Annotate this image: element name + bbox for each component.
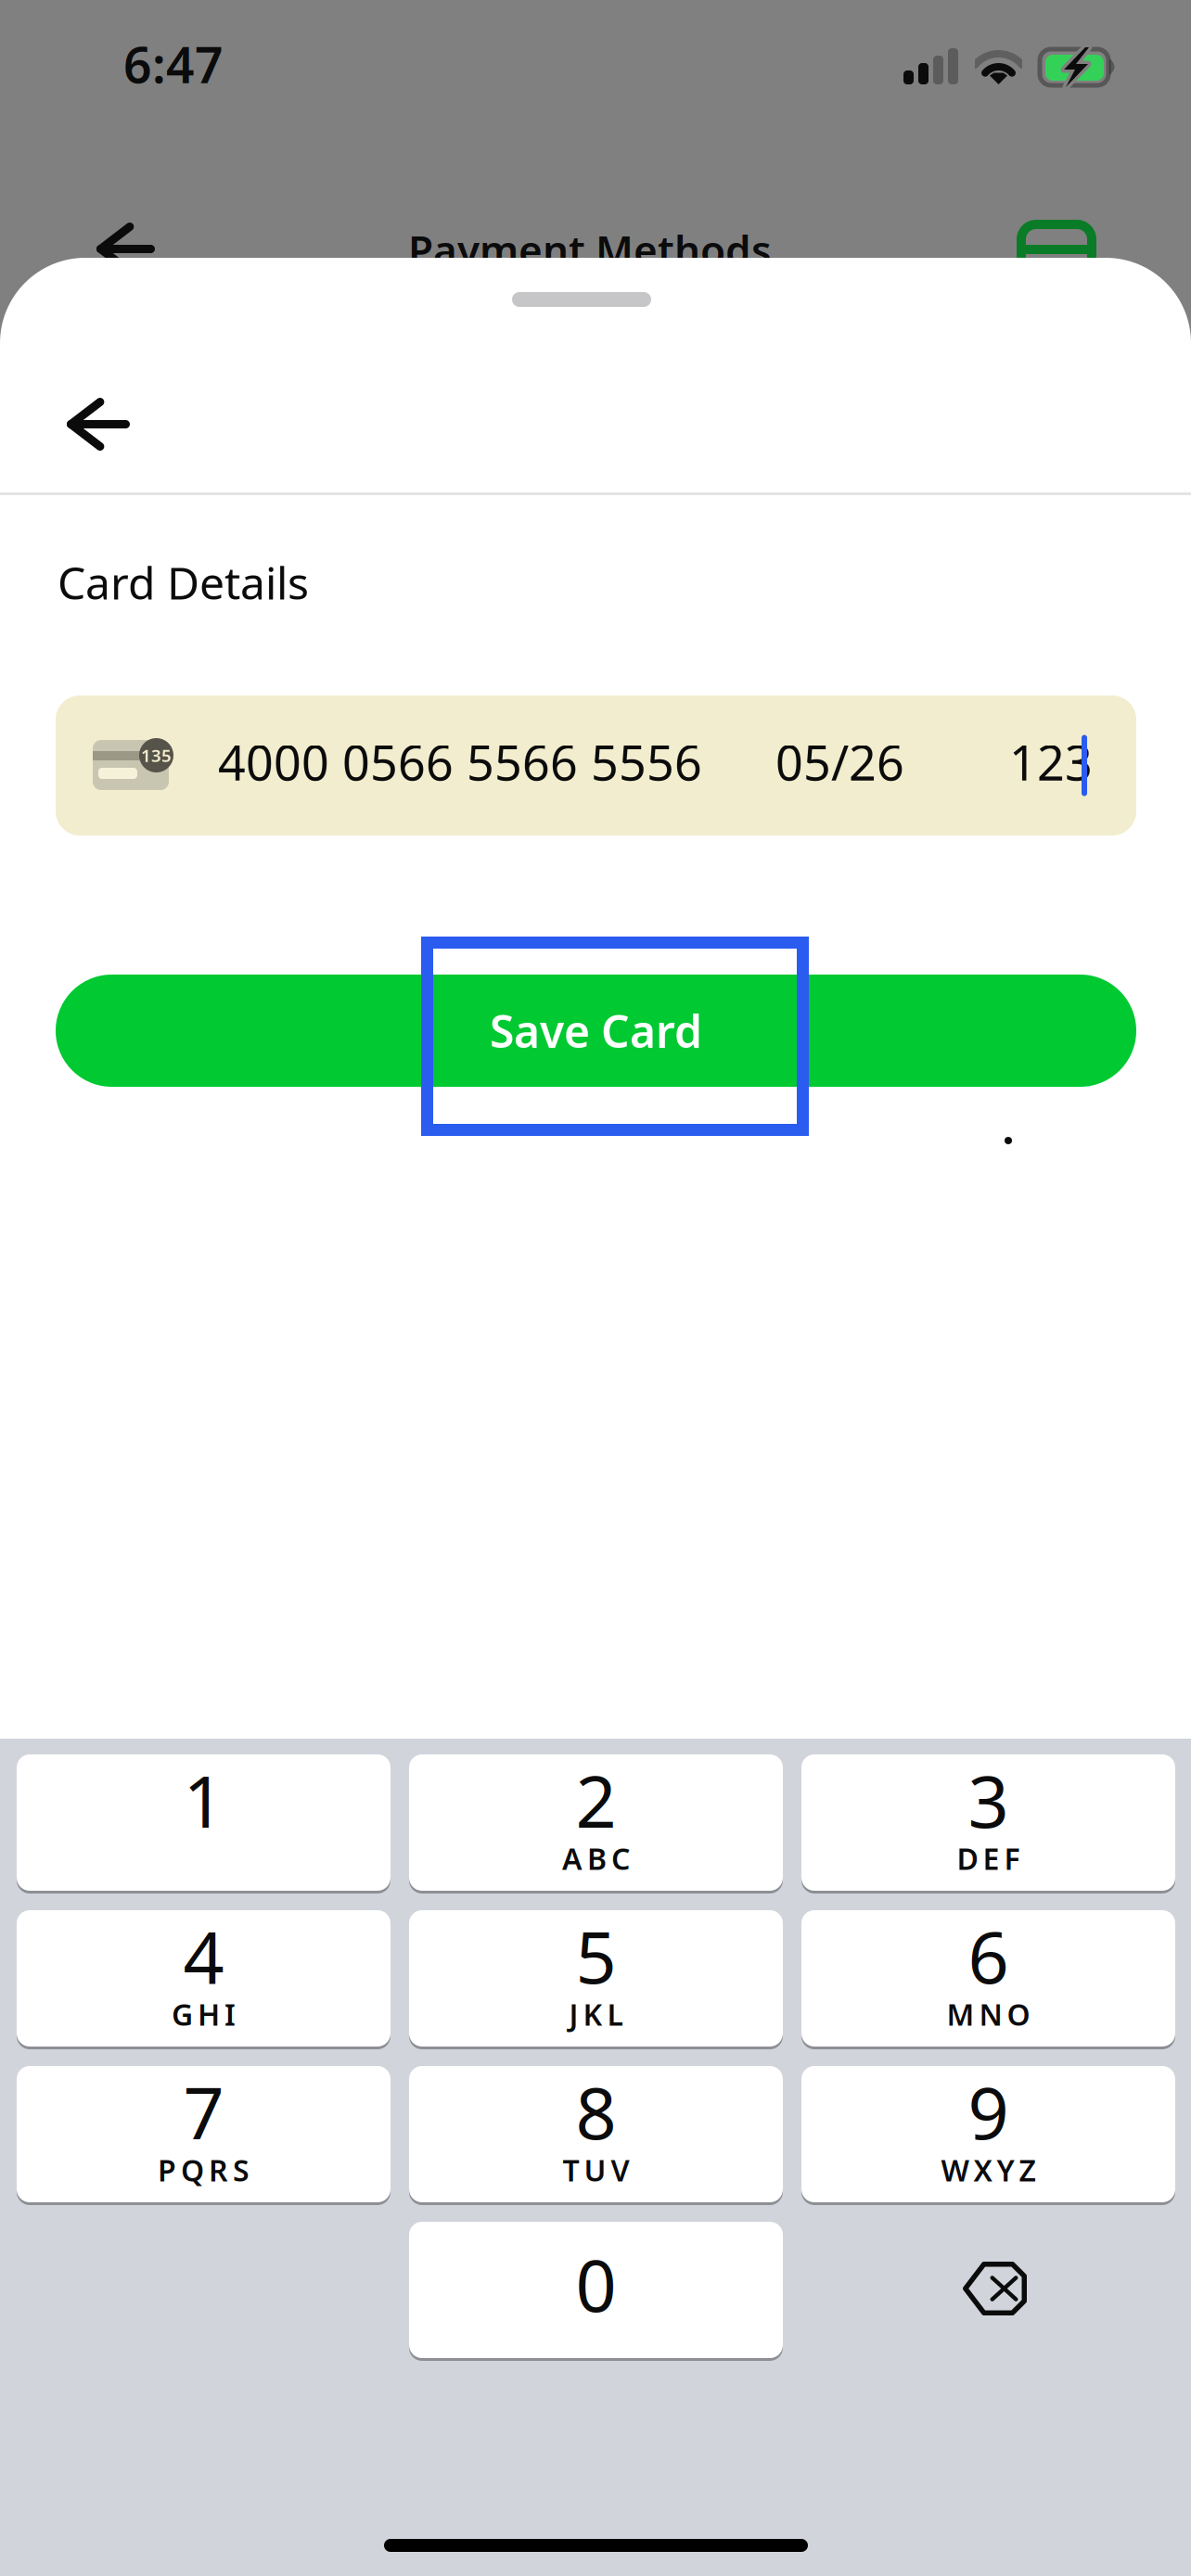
staticText: 6 [968, 1908, 1009, 2003]
staticText: 123 [1009, 730, 1093, 794]
staticText: TUV [563, 2150, 629, 2190]
button[interactable]: Back [63, 370, 187, 509]
button[interactable]: 6 [801, 1910, 1175, 2049]
staticText: WXYZ [941, 2150, 1036, 2190]
button[interactable]: 5 [409, 1910, 783, 2049]
staticText: 5 [576, 1908, 616, 2003]
button[interactable]: 8 [409, 2066, 783, 2205]
staticText: DEF [957, 1839, 1020, 1878]
button[interactable]: 3 [801, 1754, 1175, 1894]
staticText: 0 [576, 2236, 616, 2332]
staticText: 135 [141, 744, 172, 767]
staticText: GHI [172, 1994, 236, 2034]
staticText: PQRS [158, 2150, 250, 2190]
staticText: 4 [183, 1908, 224, 2003]
staticText: 3 [968, 1752, 1009, 1848]
button[interactable]: Delete [801, 2222, 1175, 2361]
staticText: Save Card [490, 1001, 702, 1060]
staticText: 7 [183, 2064, 224, 2159]
staticText: Card Details [58, 553, 309, 612]
button[interactable]: Save Card [56, 975, 1136, 1087]
staticText: ABC [562, 1839, 630, 1878]
staticText: 4000 0566 5566 5556 [218, 730, 702, 794]
staticText: JKL [569, 1994, 623, 2034]
button[interactable]: 1 [17, 1754, 391, 1894]
button[interactable]: 4 [17, 1910, 391, 2049]
staticText: 6:47 [123, 31, 224, 97]
staticText: 05/26 [775, 730, 904, 794]
button[interactable]: 9 [801, 2066, 1175, 2205]
button[interactable]: Add payment method [1013, 216, 1128, 322]
staticText: Payment Methods [408, 222, 772, 277]
button[interactable]: 0 [409, 2222, 783, 2361]
staticText: 8 [576, 2064, 616, 2159]
button[interactable]: 2 [409, 1754, 783, 1894]
staticText: MNO [947, 1994, 1030, 2034]
staticText: 2 [576, 1752, 616, 1848]
staticText: 1 [183, 1752, 224, 1848]
button[interactable]: 7 [17, 2066, 391, 2205]
button[interactable]: Back [93, 219, 208, 325]
staticText: 9 [968, 2064, 1009, 2159]
